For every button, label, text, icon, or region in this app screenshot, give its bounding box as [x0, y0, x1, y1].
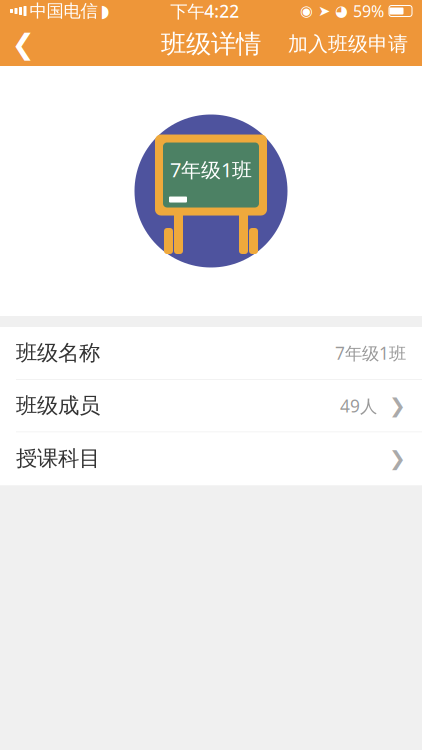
- staticText: 班级详情: [161, 28, 261, 59]
- staticText: ➤: [318, 3, 330, 19]
- staticText: ❮: [11, 28, 34, 60]
- staticText: ◕: [335, 3, 348, 19]
- staticText: 7年级1班: [170, 156, 252, 183]
- staticText: 49人: [340, 394, 377, 417]
- button[interactable]: 班级名称: [0, 327, 422, 380]
- staticText: 加入班级申请: [288, 32, 408, 56]
- staticText: 中国电信: [29, 0, 97, 22]
- button[interactable]: 加入班级申请: [274, 22, 422, 66]
- staticText: 下午4:22: [170, 0, 239, 22]
- staticText: 授课科目: [16, 445, 100, 471]
- staticText: ◉: [300, 3, 313, 19]
- staticText: ❯: [389, 394, 406, 417]
- staticText: ❯: [389, 447, 406, 470]
- staticText: 59%: [353, 0, 384, 22]
- button[interactable]: 班级成员: [0, 380, 422, 432]
- button[interactable]: 授课科目: [0, 432, 422, 485]
- staticText: 7年级1班: [335, 341, 406, 364]
- staticText: 班级成员: [16, 393, 100, 419]
- staticText: 班级名称: [16, 340, 100, 366]
- button[interactable]: 返回: [0, 22, 46, 66]
- staticText: ◗: [100, 1, 109, 21]
